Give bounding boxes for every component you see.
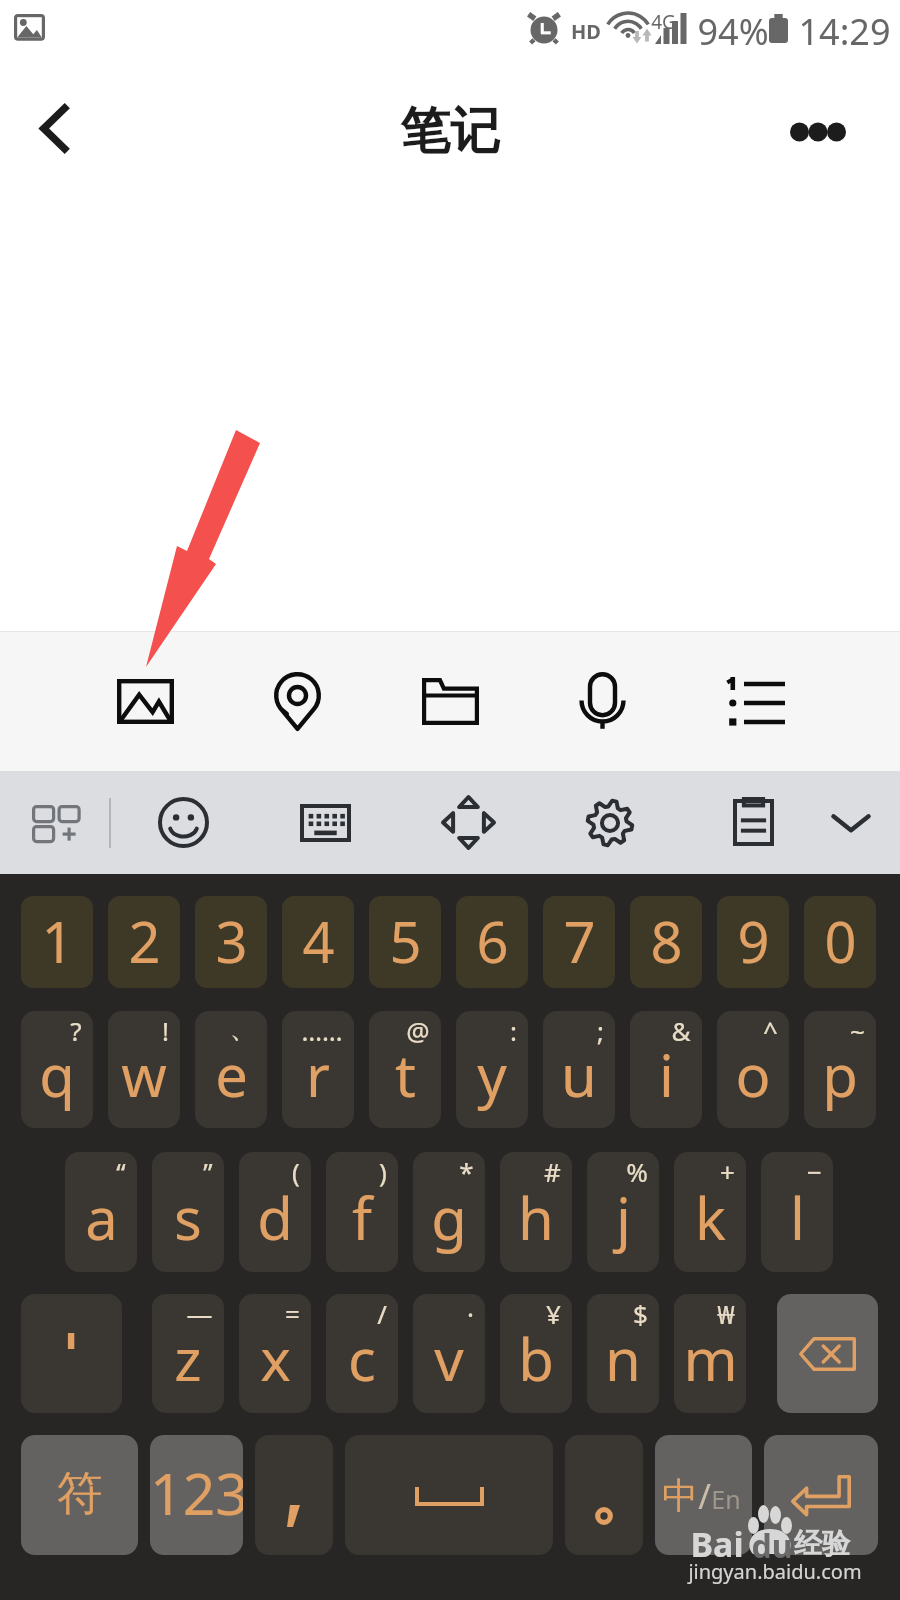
staticText: Bai — [690, 1521, 744, 1567]
button[interactable]: Add widget — [5, 771, 105, 874]
button[interactable]: 6 — [456, 896, 528, 988]
staticText: l — [790, 1178, 805, 1257]
button[interactable]: ? — [21, 1011, 93, 1128]
staticText: q — [39, 1035, 75, 1114]
button[interactable]: / — [326, 1294, 398, 1413]
staticText: i — [659, 1035, 674, 1114]
button[interactable]: 5 — [369, 896, 441, 988]
button[interactable]: 2 — [108, 896, 180, 988]
button[interactable]: Folder — [380, 631, 520, 771]
button[interactable]: ₩ — [674, 1294, 746, 1413]
staticText: 5 — [389, 903, 422, 979]
staticText: # — [544, 1154, 561, 1189]
button[interactable]: Clipboard — [688, 771, 818, 874]
button[interactable]: ” — [152, 1152, 224, 1272]
button[interactable]: Insert image — [75, 631, 215, 771]
staticText: ^ — [763, 1013, 778, 1048]
staticText: ~ — [850, 1013, 865, 1048]
button[interactable]: More options — [770, 102, 865, 162]
staticText: 4G — [651, 9, 676, 35]
button[interactable]: …… — [282, 1011, 354, 1128]
button[interactable]: Voice input — [532, 631, 672, 771]
staticText: c — [348, 1319, 376, 1398]
button[interactable]: ¥ — [500, 1294, 572, 1413]
staticText: f — [352, 1178, 372, 1257]
button[interactable]: $ — [587, 1294, 659, 1413]
staticText: ( — [292, 1154, 300, 1189]
button[interactable]: Hide keyboard — [806, 771, 896, 874]
button[interactable]: 8 — [630, 896, 702, 988]
button[interactable]: 、 — [195, 1011, 267, 1128]
button[interactable]: 9 — [717, 896, 789, 988]
staticText: — — [186, 1296, 213, 1331]
button[interactable]: 7 — [543, 896, 615, 988]
staticText: + — [720, 1154, 735, 1189]
button[interactable]: 1 — [21, 896, 93, 988]
button[interactable]: Settings — [545, 771, 675, 874]
staticText: jingyan.baidu.com — [688, 1558, 862, 1585]
button[interactable]: & — [630, 1011, 702, 1128]
staticText: % — [626, 1154, 648, 1189]
staticText: y — [477, 1035, 507, 1114]
button[interactable]: ) — [326, 1152, 398, 1272]
button[interactable]: # — [500, 1152, 572, 1272]
staticText: 7 — [563, 903, 596, 979]
button[interactable]: ^ — [717, 1011, 789, 1128]
button[interactable]: ~ — [804, 1011, 876, 1128]
button[interactable]: Move cursor — [403, 771, 533, 874]
staticText: 9 — [737, 903, 770, 979]
button[interactable]: 中 — [655, 1435, 752, 1555]
button[interactable]: − — [761, 1152, 833, 1272]
button[interactable]: 4 — [282, 896, 354, 988]
staticText: n — [605, 1319, 641, 1398]
button[interactable]: 123 — [150, 1435, 243, 1555]
button[interactable]: + — [674, 1152, 746, 1272]
staticText: 94% — [697, 7, 769, 56]
staticText: x — [260, 1319, 291, 1398]
button[interactable]: “ — [65, 1152, 137, 1272]
staticText: 0 — [824, 903, 857, 979]
staticText: @ — [406, 1013, 430, 1048]
button[interactable]: Space — [345, 1435, 553, 1555]
button[interactable]: ; — [543, 1011, 615, 1128]
staticText: m — [683, 1319, 738, 1398]
button[interactable]: = — [239, 1294, 311, 1413]
staticText: 14:29 — [798, 7, 891, 56]
button[interactable]: Enter — [764, 1435, 878, 1555]
button[interactable]: Full stop — [565, 1435, 643, 1555]
button[interactable]: Backspace — [777, 1294, 878, 1413]
staticText: En — [711, 1482, 741, 1516]
staticText: t — [395, 1035, 416, 1114]
button[interactable]: * — [413, 1152, 485, 1272]
staticText: $ — [633, 1296, 648, 1331]
staticText: − — [807, 1154, 822, 1189]
staticText: = — [285, 1296, 300, 1331]
button[interactable]: 符 — [21, 1435, 138, 1555]
button[interactable]: Apostrophe — [21, 1294, 122, 1413]
staticText: 2 — [128, 903, 161, 979]
button[interactable]: 3 — [195, 896, 267, 988]
staticText: s — [174, 1178, 202, 1257]
button[interactable]: Location — [227, 631, 367, 771]
staticText: / — [698, 1473, 711, 1519]
button[interactable]: ! — [108, 1011, 180, 1128]
button[interactable]: — — [152, 1294, 224, 1413]
button[interactable]: Comma — [255, 1435, 333, 1555]
button[interactable]: Keyboard layout — [260, 771, 390, 874]
button[interactable]: @ — [369, 1011, 441, 1128]
staticText: ” — [203, 1154, 213, 1189]
button[interactable]: Emoji — [123, 771, 243, 874]
staticText: 符 — [57, 1465, 103, 1523]
staticText: 中 — [662, 1473, 698, 1518]
button[interactable]: % — [587, 1152, 659, 1272]
button[interactable]: ( — [239, 1152, 311, 1272]
button[interactable]: Back — [8, 81, 102, 175]
staticText: u — [561, 1035, 597, 1114]
button[interactable]: : — [456, 1011, 528, 1128]
staticText: 笔记 — [0, 100, 900, 163]
button[interactable]: · — [413, 1294, 485, 1413]
staticText: g — [431, 1178, 467, 1257]
button[interactable]: Ordered list — [685, 631, 825, 771]
button[interactable]: 0 — [804, 896, 876, 988]
staticText: ₩ — [717, 1296, 735, 1331]
